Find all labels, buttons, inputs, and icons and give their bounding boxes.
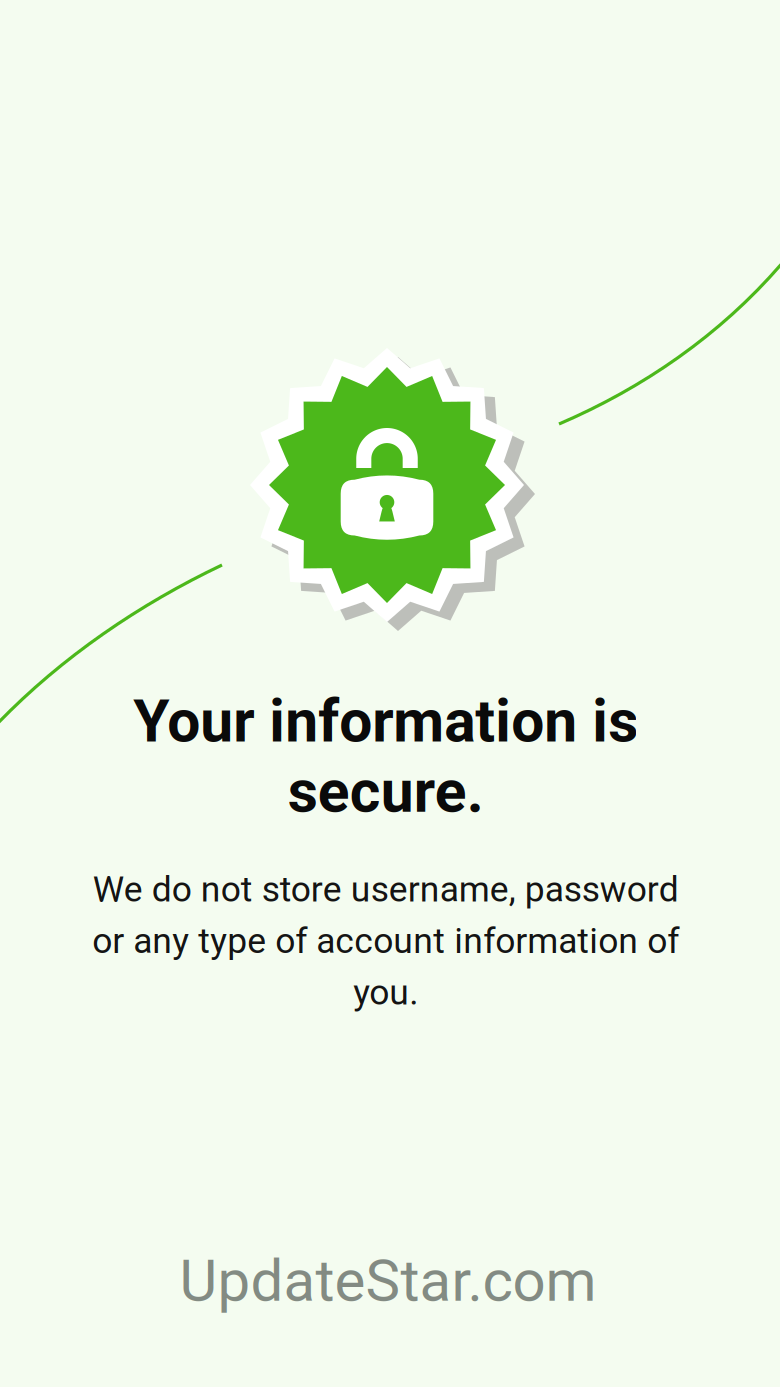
staticText: We do not store username, password or an… [92, 869, 679, 1013]
staticText: Your information is secure. [133, 687, 638, 826]
staticText: UpdateStar.com [179, 1247, 596, 1315]
